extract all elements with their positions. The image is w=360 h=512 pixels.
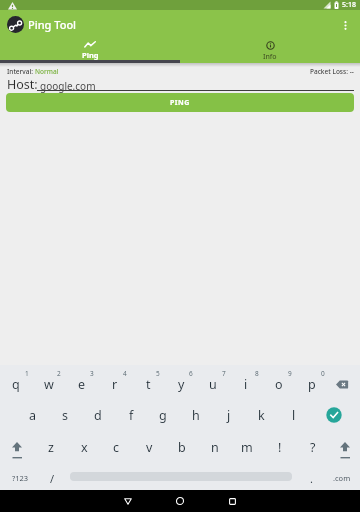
button[interactable]: Info xyxy=(180,38,360,63)
staticText: ! xyxy=(278,439,282,456)
staticText: Normal xyxy=(35,67,59,76)
button[interactable]: ? xyxy=(298,433,328,461)
staticText: d xyxy=(94,407,102,424)
staticText: 2 xyxy=(57,369,61,378)
staticText: . xyxy=(310,471,313,486)
button[interactable] xyxy=(106,490,150,512)
button[interactable]: / xyxy=(37,464,67,492)
staticText: 8 xyxy=(255,369,259,378)
button[interactable]: y xyxy=(166,370,196,398)
staticText: 7 xyxy=(222,369,226,378)
staticText: r xyxy=(112,376,118,393)
button[interactable] xyxy=(158,490,202,512)
button[interactable]: u xyxy=(198,370,228,398)
staticText: / xyxy=(50,471,55,486)
button[interactable]: z xyxy=(36,433,66,461)
staticText: ? xyxy=(310,439,316,456)
staticText: x xyxy=(81,439,88,456)
button[interactable]: d xyxy=(83,401,113,429)
button[interactable] xyxy=(319,401,349,429)
button[interactable] xyxy=(3,433,31,461)
staticText: Host: xyxy=(7,76,38,93)
button[interactable]: q xyxy=(1,370,31,398)
button[interactable]: ! xyxy=(265,433,295,461)
staticText: 5 xyxy=(156,369,160,378)
staticText: m xyxy=(241,439,253,456)
staticText: s xyxy=(62,407,68,424)
button[interactable]: l xyxy=(279,401,309,429)
staticText: j xyxy=(227,407,231,424)
staticText: k xyxy=(258,407,265,424)
staticText: l xyxy=(292,407,296,424)
button[interactable]: f xyxy=(116,401,146,429)
staticText: w xyxy=(44,376,54,393)
staticText: Ping xyxy=(82,50,99,60)
staticText: o xyxy=(275,376,283,393)
staticText: google.com xyxy=(40,79,96,93)
button[interactable]: a xyxy=(18,401,48,429)
button[interactable]: m xyxy=(232,433,262,461)
button[interactable]: o xyxy=(264,370,294,398)
staticText: Interval: xyxy=(7,67,35,76)
staticText: h xyxy=(192,407,200,424)
button[interactable]: p xyxy=(297,370,327,398)
button[interactable]: x xyxy=(69,433,99,461)
staticText: Packet Loss: -- xyxy=(310,67,354,76)
staticText: 3 xyxy=(90,369,94,378)
staticText: z xyxy=(48,439,54,456)
staticText: v xyxy=(146,439,153,456)
staticText: 9 xyxy=(288,369,292,378)
staticText: i xyxy=(244,376,248,393)
staticText: y xyxy=(178,376,185,393)
staticText: p xyxy=(308,376,316,393)
staticText: t xyxy=(146,376,151,393)
button[interactable]: r xyxy=(100,370,130,398)
staticText: .com xyxy=(333,473,351,483)
staticText: q xyxy=(12,376,20,393)
button[interactable]: Ping xyxy=(0,38,180,63)
staticText: g xyxy=(159,407,167,424)
staticText: Info xyxy=(263,52,277,62)
button[interactable]: b xyxy=(167,433,197,461)
button[interactable]: g xyxy=(148,401,178,429)
staticText: 0 xyxy=(321,369,325,378)
staticText: 1 xyxy=(25,369,29,378)
button[interactable]: i xyxy=(231,370,261,398)
button[interactable]: t xyxy=(133,370,163,398)
button[interactable]: ?123 xyxy=(3,464,37,492)
button[interactable]: n xyxy=(200,433,230,461)
staticText: c xyxy=(113,439,120,456)
staticText: e xyxy=(78,376,86,393)
button[interactable] xyxy=(327,370,357,398)
button[interactable]: v xyxy=(134,433,164,461)
staticText: 6 xyxy=(189,369,193,378)
staticText: u xyxy=(209,376,217,393)
button[interactable]: e xyxy=(67,370,97,398)
button[interactable] xyxy=(210,490,254,512)
button[interactable]: PING xyxy=(6,93,354,112)
staticText: PING xyxy=(170,98,190,108)
button[interactable]: c xyxy=(101,433,131,461)
staticText: ?123 xyxy=(12,473,29,483)
button[interactable]: h xyxy=(181,401,211,429)
staticText: Ping Tool xyxy=(28,17,77,32)
button[interactable]: .com xyxy=(325,464,359,492)
button[interactable]: j xyxy=(214,401,244,429)
staticText: 5:18 xyxy=(342,0,356,10)
staticText: a xyxy=(29,407,37,424)
staticText: f xyxy=(129,407,134,424)
button[interactable]: . xyxy=(296,464,326,492)
button[interactable]: w xyxy=(34,370,64,398)
staticText: b xyxy=(178,439,186,456)
button[interactable] xyxy=(338,12,352,36)
button[interactable]: k xyxy=(246,401,276,429)
button[interactable]: s xyxy=(50,401,80,429)
staticText: 4 xyxy=(123,369,127,378)
button[interactable] xyxy=(331,433,359,461)
staticText: n xyxy=(211,439,219,456)
